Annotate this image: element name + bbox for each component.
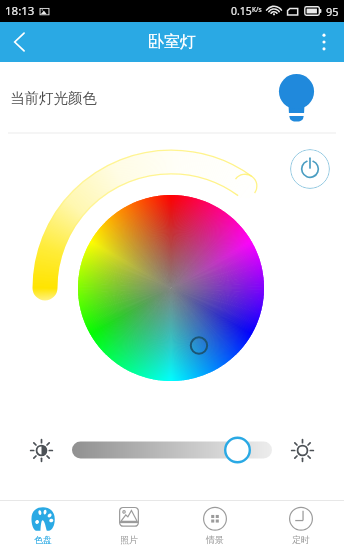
button[interactable]: Power — [290, 149, 330, 189]
staticText: 卧室灯 — [148, 32, 196, 52]
staticText: 95 — [326, 4, 339, 19]
button[interactable]: 定时 — [258, 501, 344, 550]
staticText: 0.15 — [231, 4, 252, 18]
staticText: 色盘 — [34, 534, 52, 545]
button[interactable]: Back — [0, 22, 40, 62]
staticText: 情景 — [206, 534, 224, 545]
button[interactable]: 情景 — [172, 501, 258, 550]
button[interactable]: 色盘 — [0, 501, 86, 550]
button[interactable]: 照片 — [86, 501, 172, 550]
staticText: 18:13 — [5, 3, 35, 19]
staticText: 定时 — [292, 534, 310, 545]
staticText: 照片 — [120, 534, 138, 545]
staticText: K/s — [252, 5, 262, 14]
staticText: 当前灯光颜色 — [10, 89, 97, 107]
button[interactable]: More options — [304, 22, 344, 62]
